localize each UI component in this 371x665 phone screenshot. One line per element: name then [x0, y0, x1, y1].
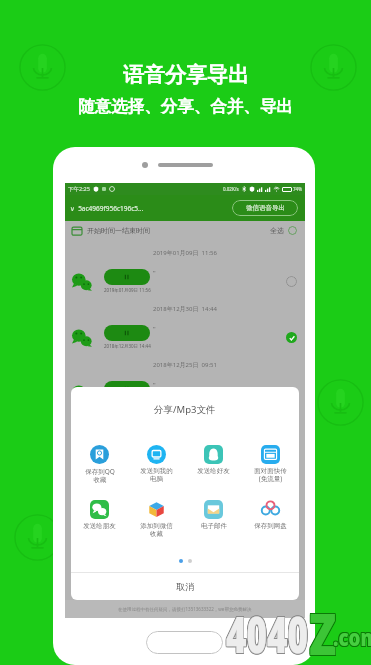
staticText: .com [334, 623, 371, 653]
staticText: 保存到QQ 收藏 [85, 467, 115, 484]
button[interactable]: Home [146, 631, 223, 654]
staticText: .com [333, 623, 371, 653]
button[interactable]: 保存到网盘 [242, 500, 299, 530]
staticText: 2018年12月30日 14:44 [153, 305, 217, 313]
staticText: 4040 [226, 600, 309, 665]
button[interactable]: '' [65, 376, 305, 410]
button[interactable]: 电子邮件 [185, 500, 242, 530]
staticText: 2019年01月09日 11:56 [104, 287, 151, 293]
staticText: 保存到网盘 [254, 522, 287, 530]
button[interactable]: 添加到微信 收藏 [128, 500, 185, 538]
staticText: 2019年01月09日 11:56 [153, 249, 217, 257]
staticText: Z [310, 596, 338, 665]
staticText: 面对面快传 (免流量) [254, 467, 287, 483]
staticText: 4040 [227, 600, 309, 665]
staticText: 2018年12月25日 09:51 [153, 361, 217, 369]
button[interactable]: 开始时间一结束时间 [65, 221, 305, 240]
staticText: '' [153, 325, 156, 333]
staticText: .com [333, 622, 371, 652]
staticText: 4040 [226, 601, 309, 665]
staticText: Z [308, 595, 336, 665]
staticText: 在使用过程中有任何疑问，请拨打13513633322，we帮您免费解决 [118, 606, 252, 612]
staticText: 74% [293, 186, 302, 192]
staticText: 4040 [225, 599, 308, 665]
staticText: 开始时间一结束时间 [87, 226, 150, 235]
button[interactable]: 发送到我的 电脑 [128, 445, 185, 483]
button[interactable]: '' [65, 264, 305, 298]
staticText: Z [309, 596, 337, 665]
button[interactable]: '' [65, 320, 305, 354]
button[interactable]: 发送给好友 [185, 445, 242, 475]
staticText: 电子邮件 [201, 522, 227, 530]
button[interactable]: 取消 [71, 573, 299, 600]
staticText: 4040 [227, 599, 309, 665]
staticText: 发送给好友 [197, 467, 230, 475]
staticText: Z [308, 594, 336, 665]
staticText: 随意选择、分享、合并、导出 [78, 96, 293, 117]
button[interactable]: 保存到QQ 收藏 [71, 445, 128, 484]
staticText: 4040 [225, 600, 308, 665]
staticText: 微信语音导出 [246, 204, 285, 212]
staticText: 发送给朋友 [83, 522, 116, 530]
staticText: '' [153, 269, 156, 277]
button[interactable]: 微信语音导出 [232, 200, 298, 216]
staticText: .com [334, 621, 371, 651]
staticText: 发送到我的 电脑 [140, 467, 173, 483]
staticText: .com [334, 622, 371, 652]
staticText: 分享/Mp3文件 [154, 403, 216, 416]
staticText: .com [332, 622, 371, 652]
staticText: 下午2:25 [68, 185, 90, 193]
staticText: 全选 [270, 226, 284, 235]
button[interactable]: 发送给朋友 [71, 500, 128, 530]
staticText: 4040 [227, 601, 309, 665]
staticText: 4040 [226, 599, 309, 665]
staticText: .com [332, 621, 371, 651]
staticText: 语音分享导出 [123, 62, 249, 88]
staticText: Z [309, 594, 337, 665]
staticText: Z [309, 595, 337, 665]
staticText: Z [310, 595, 338, 665]
staticText: 2018年12月30日 14:44 [104, 343, 151, 349]
button[interactable]: 面对面快传 (免流量) [242, 445, 299, 483]
staticText: 取消 [176, 581, 194, 592]
staticText: 0.02K/s [223, 186, 239, 192]
staticText: ∨ 5ac4969f956c196c5... [70, 204, 144, 213]
staticText: '' [153, 381, 156, 389]
staticText: Z [310, 594, 338, 665]
staticText: 添加到微信 收藏 [140, 522, 173, 538]
staticText: 4040 [225, 601, 308, 665]
staticText: .com [333, 621, 371, 651]
staticText: .com [332, 623, 371, 653]
staticText: Z [308, 596, 336, 665]
